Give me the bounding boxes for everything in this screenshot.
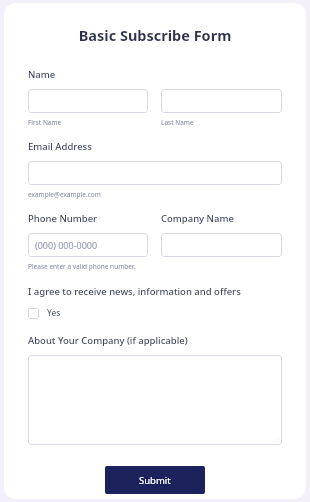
staticText: example@example.com <box>28 190 101 199</box>
staticText: Company Name <box>161 212 234 225</box>
button[interactable] <box>28 355 282 445</box>
button[interactable]: Submit <box>105 466 205 494</box>
staticText: I agree to receive news, information and… <box>28 285 241 298</box>
staticText: Name <box>28 68 56 81</box>
staticText: Email Address <box>28 140 92 153</box>
button[interactable] <box>28 89 148 113</box>
staticText: Submit <box>139 474 171 487</box>
button[interactable]: (000) 000-0000 <box>28 233 148 257</box>
button[interactable] <box>161 89 282 113</box>
staticText: Please enter a valid phone number. <box>28 262 136 271</box>
staticText: Phone Number <box>28 212 98 225</box>
staticText: About Your Company (if applicable) <box>28 334 188 347</box>
staticText: Yes <box>47 307 61 319</box>
button[interactable] <box>28 161 282 185</box>
staticText: First Name <box>28 118 62 127</box>
button[interactable] <box>161 233 282 257</box>
button[interactable]: Yes <box>28 307 61 319</box>
staticText: Last Name <box>161 118 194 127</box>
staticText: Basic Subscribe Form <box>4 25 306 45</box>
staticText: (000) 000-0000 <box>35 239 98 251</box>
